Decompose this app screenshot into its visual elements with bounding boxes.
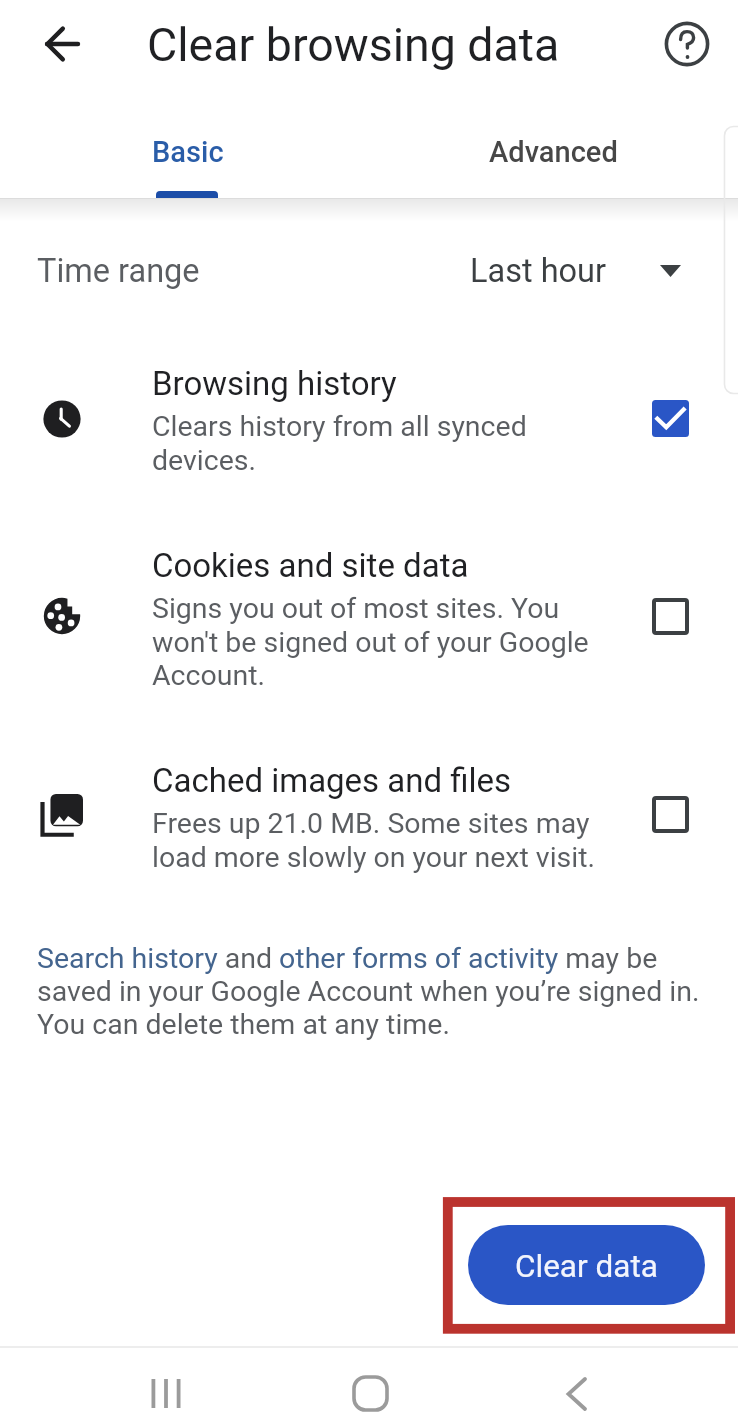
staticText: Signs you out of most sites. You won't b…: [152, 592, 589, 691]
staticText: Browsing history: [152, 364, 397, 403]
button[interactable]: Toggle Cached images and files: [652, 796, 689, 833]
button[interactable]: Recent apps: [125, 1358, 206, 1424]
button[interactable]: Toggle Cookies and site data: [652, 598, 689, 635]
button[interactable]: Time range: [0, 232, 738, 316]
button[interactable]: Cached images and files: [0, 743, 738, 913]
button[interactable]: Back: [21, 4, 101, 84]
button[interactable]: Back: [536, 1359, 616, 1424]
staticText: Cached images and files: [152, 761, 512, 800]
staticText: Frees up 21.0 MB. Some sites may load mo…: [152, 807, 596, 873]
staticText: Search history and other forms of activi…: [37, 942, 700, 1041]
staticText: Time range: [37, 252, 200, 290]
button[interactable]: Basic: [3, 110, 372, 198]
button[interactable]: Cookies and site data: [0, 528, 738, 698]
button[interactable]: Toggle Browsing history: [652, 400, 689, 437]
staticText: Basic: [152, 135, 224, 169]
button[interactable]: Browsing history: [0, 346, 738, 516]
button[interactable]: Clear data: [468, 1225, 705, 1305]
staticText: Advanced: [489, 135, 618, 169]
button[interactable]: Advanced: [369, 110, 738, 198]
staticText: Clears history from all synced devices.: [152, 410, 527, 476]
staticText: Last hour: [470, 252, 607, 290]
button[interactable]: Help: [647, 4, 727, 84]
staticText: Clear data: [515, 1248, 658, 1285]
staticText: Clear browsing data: [147, 18, 560, 72]
staticText: Cookies and site data: [152, 546, 469, 585]
button[interactable]: Home: [330, 1358, 410, 1424]
